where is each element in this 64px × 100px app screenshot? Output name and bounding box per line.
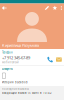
staticText: История вызовов (2, 80, 28, 84)
staticText: Кириллица Разумова (2, 42, 39, 48)
button[interactable]: Send message (55, 56, 63, 63)
staticText: Аккаунты (2, 67, 13, 71)
button[interactable]: Call (45, 55, 55, 64)
button[interactable]: Back (0, 4, 8, 11)
staticText: мобильный (2, 60, 19, 64)
button[interactable]: Edit contact (43, 4, 51, 11)
button[interactable]: More options (59, 4, 64, 11)
button[interactable]: Add to favourites (51, 4, 59, 11)
staticText: Входящий вызов (5 мин) в 10:42 (2, 91, 52, 95)
staticText: +7 912 345-67-89 (2, 55, 30, 60)
staticText: последние вызовы (2, 87, 29, 91)
staticText: Телефон (2, 51, 13, 54)
